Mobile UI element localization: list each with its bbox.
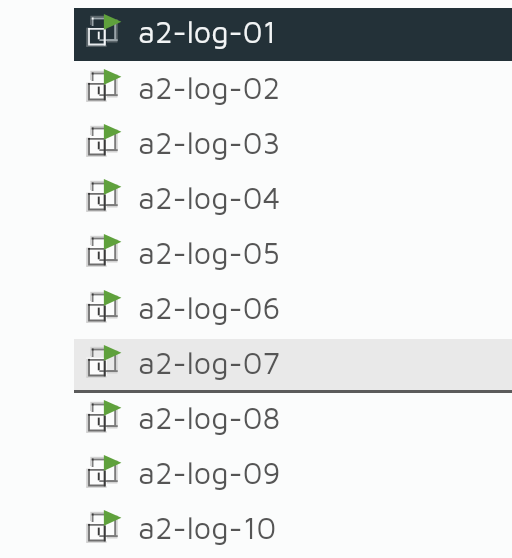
staticText: a2-log-01 [138, 14, 277, 50]
staticText: a2-log-09 [138, 455, 281, 491]
button[interactable] [74, 449, 512, 502]
button[interactable] [74, 63, 512, 116]
staticText: a2-log-10 [138, 510, 277, 546]
staticText: a2-log-05 [138, 235, 280, 271]
staticText: a2-log-08 [138, 400, 281, 436]
staticText: a2-log-07 [138, 345, 280, 381]
button[interactable] [74, 504, 512, 557]
button[interactable] [74, 339, 512, 392]
button[interactable] [74, 284, 512, 337]
button[interactable] [74, 228, 512, 281]
staticText: a2-log-02 [138, 70, 281, 106]
staticText: a2-log-03 [138, 125, 281, 161]
staticText: a2-log-04 [138, 180, 281, 216]
staticText: a2-log-06 [138, 290, 281, 326]
button[interactable] [74, 173, 512, 226]
button[interactable] [74, 118, 512, 171]
button[interactable] [74, 394, 512, 447]
button[interactable] [74, 8, 512, 61]
